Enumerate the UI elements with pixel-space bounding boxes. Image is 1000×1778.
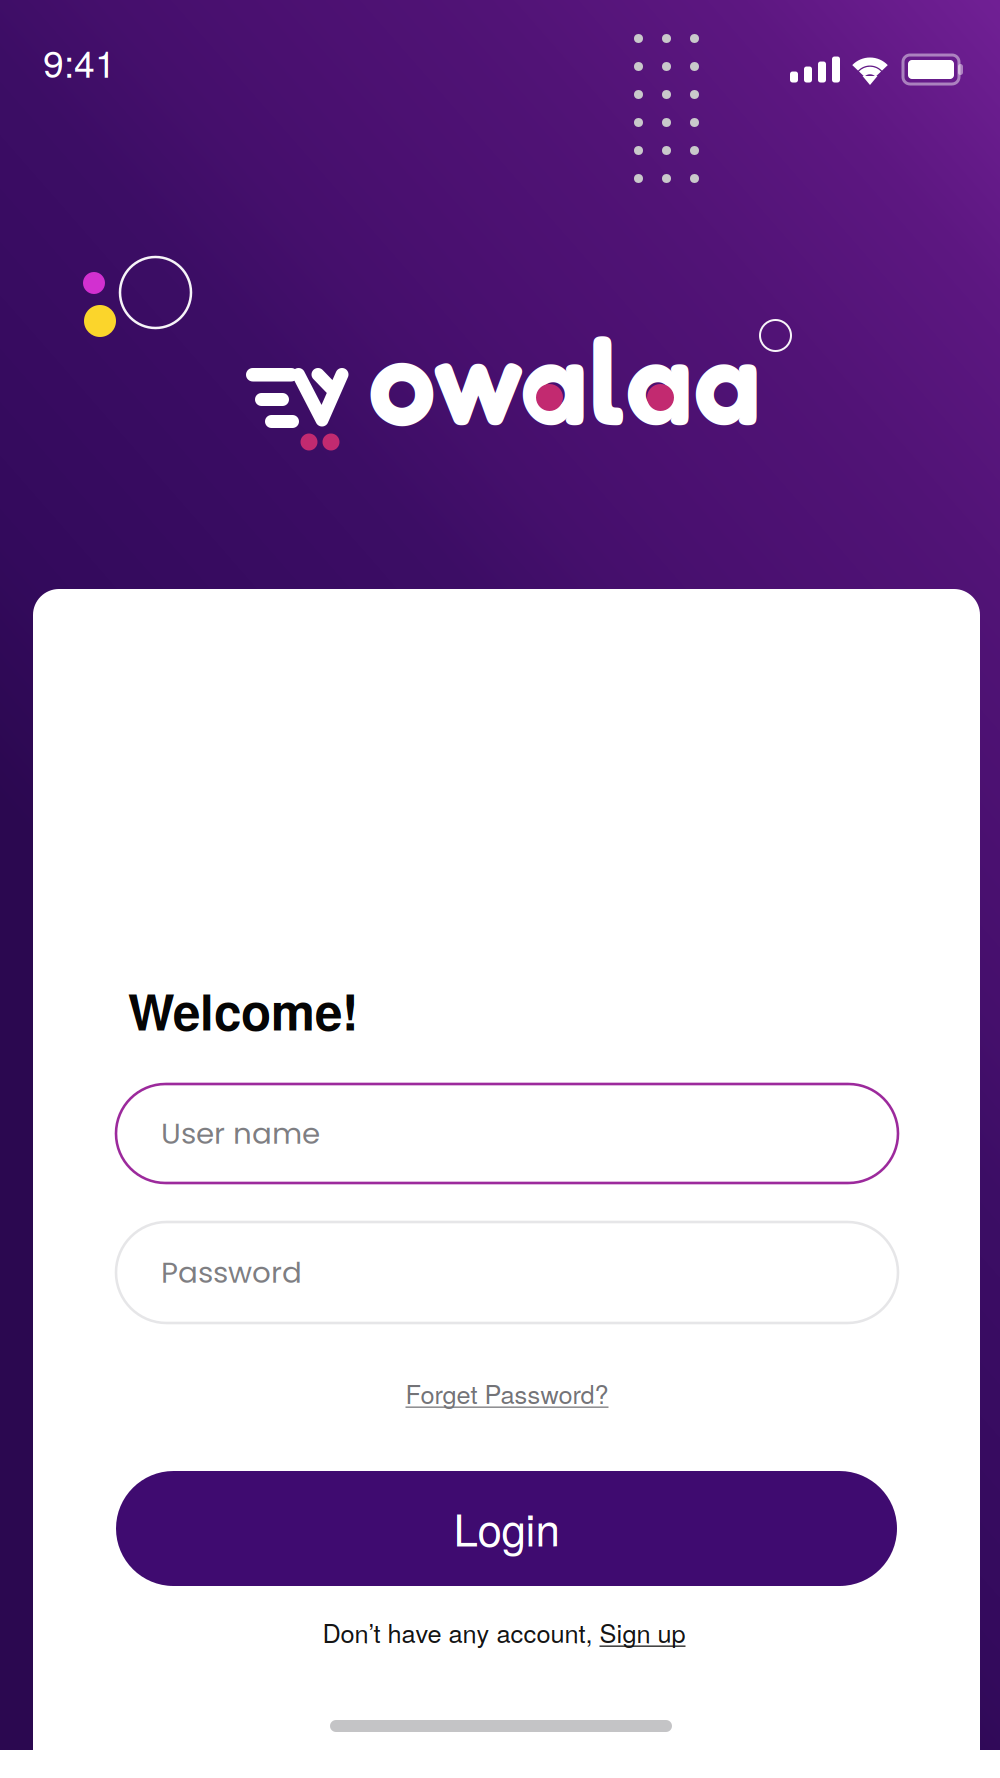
button[interactable]: Sign up <box>599 1614 685 1650</box>
button[interactable]: Forget Password? <box>116 1371 898 1415</box>
button[interactable]: Password <box>116 1222 898 1323</box>
staticText: Password <box>161 1252 302 1293</box>
staticText: 9:41 <box>43 35 116 88</box>
staticText: owalaa <box>368 306 761 453</box>
staticText: Welcome! <box>128 975 358 1046</box>
staticText: Login <box>453 1496 559 1559</box>
staticText: User name <box>161 1113 320 1154</box>
staticText: Don’t have any account, <box>322 1614 599 1650</box>
button[interactable]: Login <box>116 1471 897 1586</box>
staticText: Sign up <box>599 1614 685 1650</box>
button[interactable]: User name <box>116 1084 898 1183</box>
staticText: Forget Password? <box>405 1375 608 1411</box>
